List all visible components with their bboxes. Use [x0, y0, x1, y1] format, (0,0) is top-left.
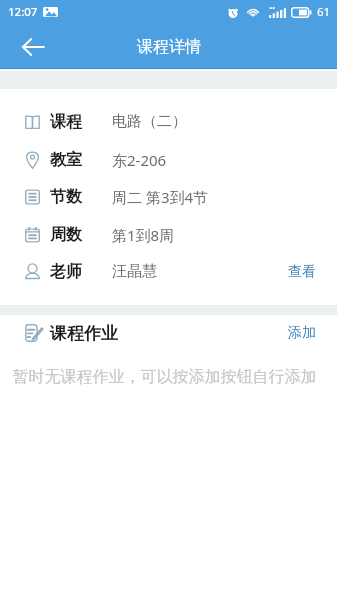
button[interactable]: 教室	[0, 141, 337, 178]
staticText: 东2-206	[112, 150, 167, 170]
staticText: 添加	[288, 324, 316, 342]
staticText: 课程	[50, 112, 82, 132]
staticText: 课程作业	[50, 323, 118, 344]
staticText: 12:07	[8, 4, 38, 20]
button[interactable]: 周数	[0, 216, 337, 253]
staticText: 教室	[50, 150, 82, 170]
staticText: 节数	[50, 187, 82, 207]
staticText: 查看	[288, 263, 316, 281]
staticText: 汪晶慧	[112, 262, 157, 281]
staticText: 61	[317, 4, 331, 20]
staticText: 第1到8周	[112, 225, 175, 245]
staticText: 电路（二）	[112, 112, 187, 131]
staticText: 周二 第3到4节	[112, 187, 209, 207]
button[interactable]: 课程	[0, 103, 337, 140]
button[interactable]: 节数	[0, 178, 337, 215]
staticText: 课程详情	[137, 37, 201, 57]
staticText: 暂时无课程作业，可以按添加按钮自行添加	[0, 367, 333, 387]
staticText: 老师	[50, 262, 82, 282]
button[interactable]: 老师	[0, 253, 337, 290]
staticText: 周数	[50, 225, 82, 245]
button[interactable]: 添加	[288, 324, 316, 342]
button[interactable]: 查看	[288, 263, 316, 281]
button[interactable]: Back	[16, 30, 50, 64]
